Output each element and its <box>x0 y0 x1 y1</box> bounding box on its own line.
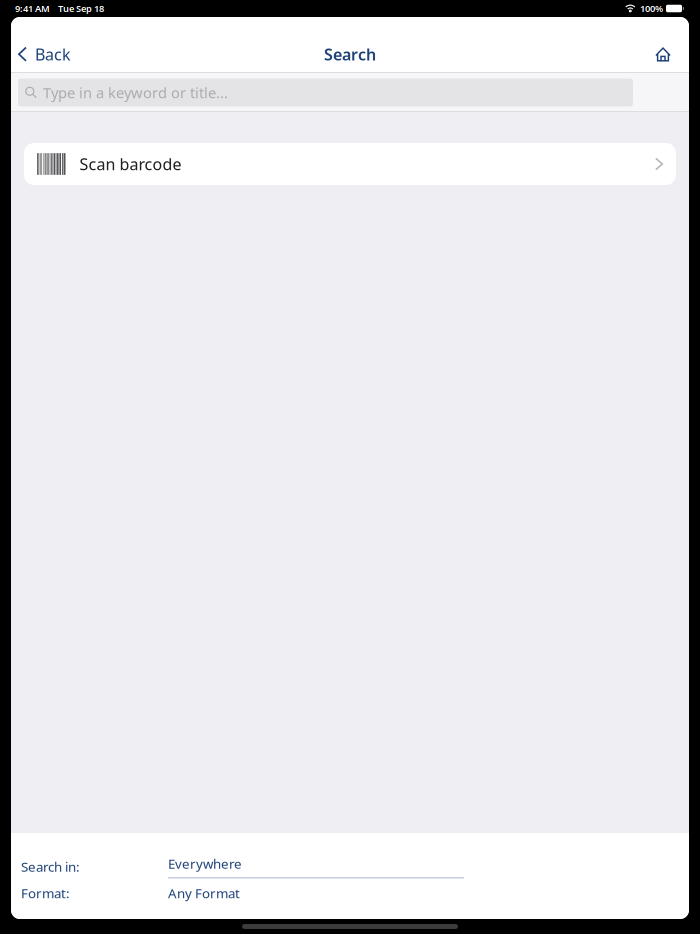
staticText: Any Format <box>168 884 240 902</box>
staticText: Search <box>324 44 376 65</box>
staticText: Everywhere <box>168 855 242 872</box>
staticText: 100% <box>640 2 663 15</box>
staticText: Tue Sep 18 <box>58 2 104 15</box>
button[interactable]: Type in a keyword or title... <box>18 78 633 106</box>
staticText: Back <box>35 44 71 65</box>
staticText: Type in a keyword or title... <box>43 83 228 102</box>
button[interactable]: Home <box>645 43 689 66</box>
staticText: 9:41 AM <box>15 2 50 15</box>
button[interactable]: Back <box>11 40 79 69</box>
button[interactable]: Format: <box>11 884 689 902</box>
staticText: Scan barcode <box>80 153 182 175</box>
button[interactable]: Scan barcode <box>24 143 676 185</box>
staticText: Search in: <box>21 858 80 875</box>
button[interactable]: Search in: <box>11 855 689 878</box>
staticText: Format: <box>21 884 70 902</box>
